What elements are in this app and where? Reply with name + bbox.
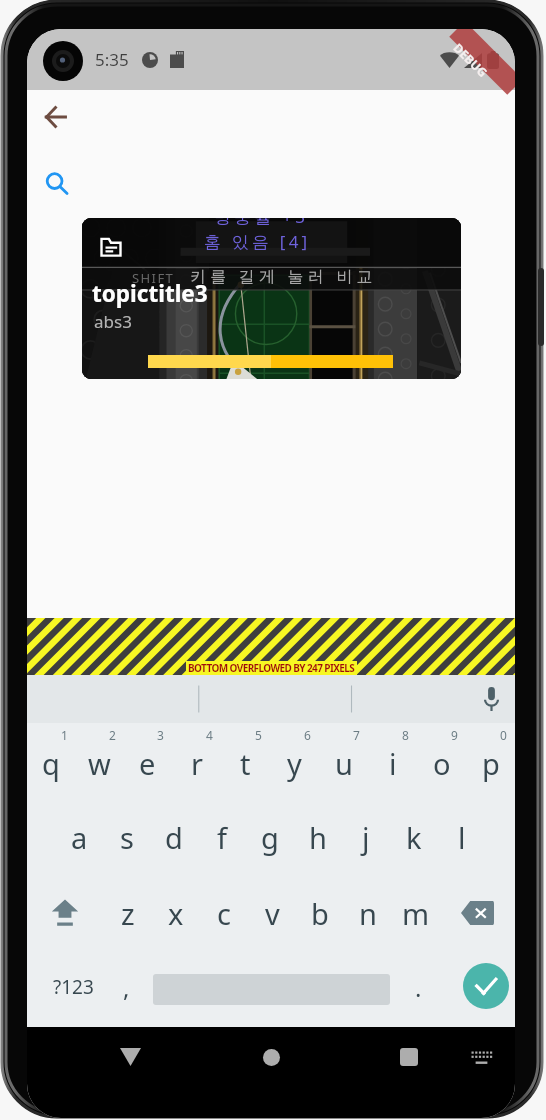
staticText: p: [482, 744, 500, 783]
staticText: m: [402, 894, 430, 933]
staticText: o: [433, 744, 451, 783]
staticText: ?123: [53, 974, 94, 1000]
staticText: BOTTOM OVERFLOWED BY 247 PIXELS: [188, 661, 355, 675]
staticText: c: [217, 894, 231, 933]
staticText: abs3: [94, 310, 132, 333]
staticText: 8: [402, 727, 409, 743]
staticText: v: [265, 894, 280, 933]
button[interactable]: v: [248, 875, 296, 951]
staticText: s: [120, 818, 134, 857]
staticText: 9: [451, 727, 458, 743]
staticText: a: [71, 818, 88, 857]
button[interactable]: j: [342, 799, 390, 875]
button[interactable]: z: [103, 875, 152, 951]
button[interactable]: m: [392, 875, 440, 951]
staticText: k: [406, 818, 422, 857]
button[interactable]: g: [246, 799, 294, 875]
staticText: x: [168, 894, 184, 933]
button[interactable]: 명중률 +3: [82, 218, 461, 379]
button[interactable]: 6: [270, 723, 319, 799]
button[interactable]: 7: [319, 723, 368, 799]
staticText: 7: [353, 727, 360, 743]
button[interactable]: n: [344, 875, 392, 951]
button[interactable]: a: [56, 799, 103, 875]
staticText: e: [139, 744, 156, 783]
button[interactable]: .: [390, 951, 446, 1027]
staticText: topictitle3: [92, 278, 208, 309]
staticText: 4: [206, 727, 213, 743]
staticText: h: [309, 818, 327, 857]
staticText: DEBUG: [450, 39, 491, 80]
staticText: w: [88, 744, 111, 783]
button[interactable]: s: [103, 799, 150, 875]
button[interactable]: k: [390, 799, 438, 875]
staticText: ,: [123, 971, 130, 1004]
staticText: t: [240, 744, 251, 783]
button[interactable]: d: [150, 799, 198, 875]
button[interactable]: x: [152, 875, 200, 951]
button[interactable]: 8: [368, 723, 417, 799]
button[interactable]: 4: [172, 723, 221, 799]
button[interactable]: h: [294, 799, 342, 875]
button[interactable]: ,: [99, 951, 153, 1027]
button[interactable]: Home: [251, 1037, 291, 1077]
button[interactable]: Space: [153, 951, 390, 1027]
staticText: g: [261, 818, 279, 857]
staticText: .: [415, 971, 422, 1004]
button[interactable]: c: [200, 875, 248, 951]
staticText: 0: [500, 727, 507, 743]
staticText: d: [165, 818, 183, 857]
staticText: 5:35: [95, 48, 129, 71]
staticText: 홈 있음 [4]: [204, 230, 311, 253]
staticText: u: [335, 744, 353, 783]
staticText: r: [191, 744, 203, 783]
staticText: 2: [109, 727, 116, 743]
button[interactable]: Shift: [27, 875, 103, 951]
staticText: q: [42, 744, 60, 783]
button[interactable]: 9: [417, 723, 466, 799]
staticText: z: [121, 894, 135, 933]
button[interactable]: 1: [27, 723, 75, 799]
staticText: 5: [255, 727, 262, 743]
staticText: SHIFT: [132, 269, 175, 287]
button[interactable]: l: [438, 799, 486, 875]
button[interactable]: Search: [33, 160, 81, 208]
staticText: f: [217, 818, 227, 857]
button[interactable]: Voice input: [467, 675, 515, 723]
staticText: 키를 길게 눌러 비교: [190, 265, 377, 287]
button[interactable]: Backspace: [440, 875, 515, 951]
staticText: 1: [61, 727, 68, 743]
staticText: n: [359, 894, 377, 933]
button[interactable]: Back: [31, 93, 79, 141]
staticText: 명중률 +3: [214, 218, 309, 228]
staticText: 3: [157, 727, 164, 743]
button[interactable]: 0: [466, 723, 515, 799]
staticText: b: [311, 894, 329, 933]
button[interactable]: f: [198, 799, 246, 875]
button[interactable]: Recents: [389, 1037, 429, 1077]
button[interactable]: Done: [446, 951, 515, 1027]
button[interactable]: Back: [110, 1037, 150, 1077]
button[interactable]: ?123: [27, 951, 115, 1027]
staticText: j: [362, 818, 370, 857]
button[interactable]: 2: [75, 723, 123, 799]
staticText: i: [389, 744, 397, 783]
staticText: l: [458, 818, 466, 857]
button[interactable]: b: [296, 875, 344, 951]
button[interactable]: 5: [221, 723, 270, 799]
staticText: 6: [304, 727, 311, 743]
button[interactable]: Switch keyboard: [461, 1037, 501, 1077]
staticText: y: [287, 744, 302, 783]
button[interactable]: 3: [123, 723, 172, 799]
